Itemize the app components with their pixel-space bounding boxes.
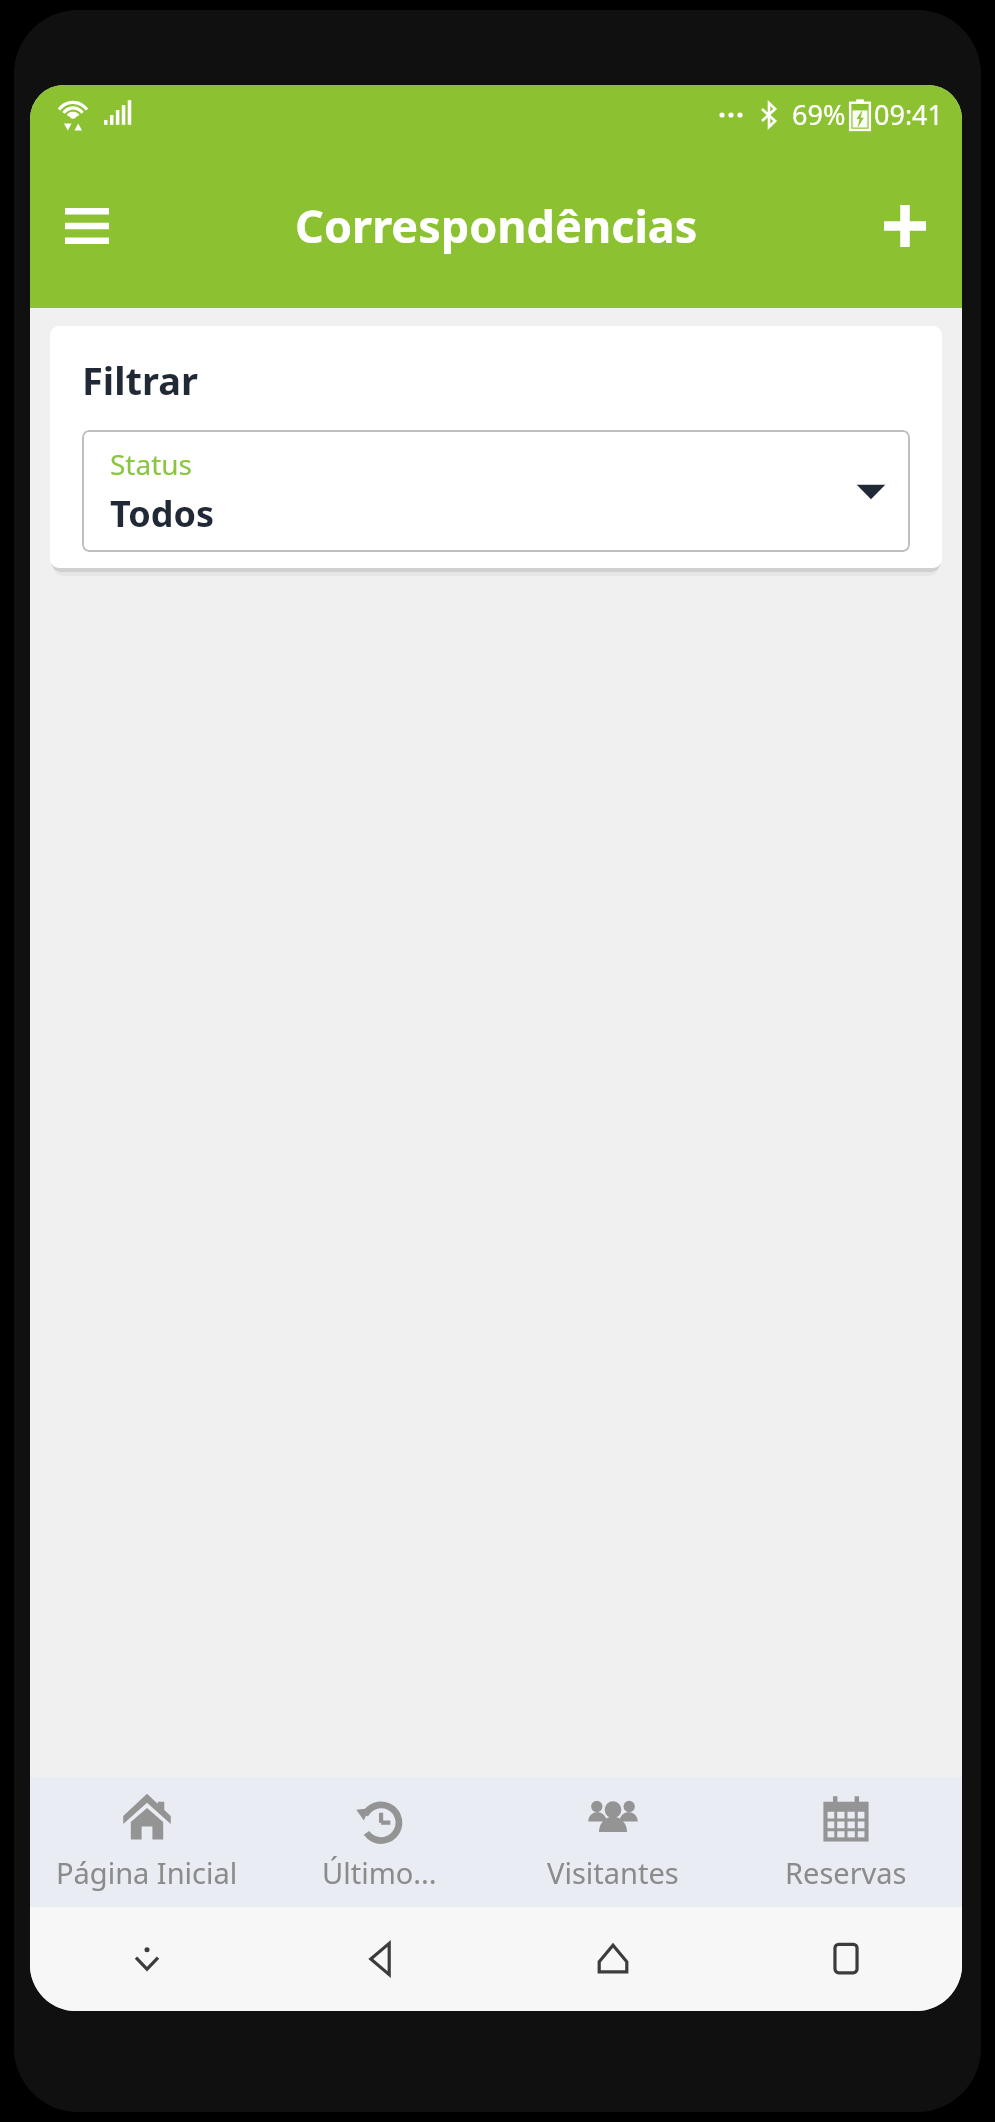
button[interactable]: Adicionar — [862, 183, 948, 269]
staticText: Todos — [110, 489, 215, 538]
staticText: Página Inicial — [56, 1853, 238, 1892]
button[interactable]: Reservas — [729, 1777, 962, 1907]
staticText: Status — [110, 445, 193, 483]
staticText: Último... — [322, 1853, 437, 1892]
button[interactable]: Recentes — [729, 1907, 962, 2011]
staticText: 69% — [792, 96, 846, 133]
button[interactable]: Página Inicial — [30, 1777, 263, 1907]
button[interactable]: Voltar — [263, 1907, 496, 2011]
button[interactable]: Status — [82, 430, 910, 552]
button[interactable]: Último... — [263, 1777, 496, 1907]
staticText: 09:41 — [874, 96, 944, 133]
button[interactable]: Visitantes — [496, 1777, 729, 1907]
staticText: Reservas — [785, 1853, 907, 1892]
staticText: Filtrar — [82, 354, 199, 406]
button[interactable]: Ocultar teclado — [30, 1907, 263, 2011]
staticText: Correspondências — [295, 195, 698, 256]
button[interactable]: Menu — [44, 183, 130, 269]
staticText: Visitantes — [547, 1853, 679, 1892]
other: Abrir lista — [854, 480, 888, 502]
button[interactable]: Início — [496, 1907, 729, 2011]
